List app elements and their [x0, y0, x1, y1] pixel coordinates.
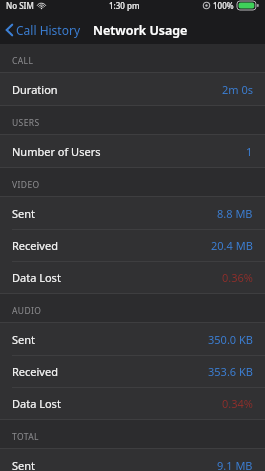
staticText: Received [12, 364, 58, 379]
staticText: 20.4 MB [211, 238, 253, 253]
staticText: Sent [12, 458, 36, 471]
staticText: 353.6 KB [208, 364, 253, 379]
staticText: Sent [12, 332, 36, 347]
staticText: 8.8 MB [217, 206, 253, 221]
staticText: Number of Users [12, 144, 101, 159]
button[interactable]: Received [0, 356, 265, 387]
staticText: Received [12, 238, 58, 253]
staticText: USERS [12, 117, 40, 129]
button[interactable]: Sent [0, 449, 265, 471]
staticText: Network Usage [93, 22, 188, 39]
button[interactable]: Data Lost [0, 388, 265, 419]
button[interactable]: Received [0, 230, 265, 261]
button[interactable]: Call History [0, 20, 85, 40]
staticText: AUDIO [12, 305, 42, 317]
staticText: No SIM [6, 0, 34, 11]
staticText: 0.36% [222, 270, 253, 285]
button[interactable]: Data Lost [0, 262, 265, 293]
staticText: 0.34% [222, 396, 253, 411]
staticText: 1:30 pm [109, 0, 140, 11]
staticText: 2m 0s [222, 82, 253, 97]
button[interactable]: Sent [0, 323, 265, 355]
staticText: Sent [12, 206, 36, 221]
staticText: Data Lost [12, 270, 61, 285]
staticText: 1 [246, 144, 253, 159]
staticText: Call History [16, 22, 81, 38]
button[interactable]: Sent [0, 197, 265, 229]
button[interactable]: Number of Users [0, 135, 265, 167]
staticText: Duration [12, 82, 58, 97]
staticText: Data Lost [12, 396, 61, 411]
button[interactable]: Duration [0, 73, 265, 105]
staticText: 350.0 KB [208, 332, 253, 347]
staticText: TOTAL [12, 431, 39, 443]
staticText: 100% [213, 0, 234, 11]
staticText: CALL [12, 55, 34, 67]
staticText: 9.1 MB [217, 458, 253, 471]
staticText: VIDEO [12, 179, 40, 191]
